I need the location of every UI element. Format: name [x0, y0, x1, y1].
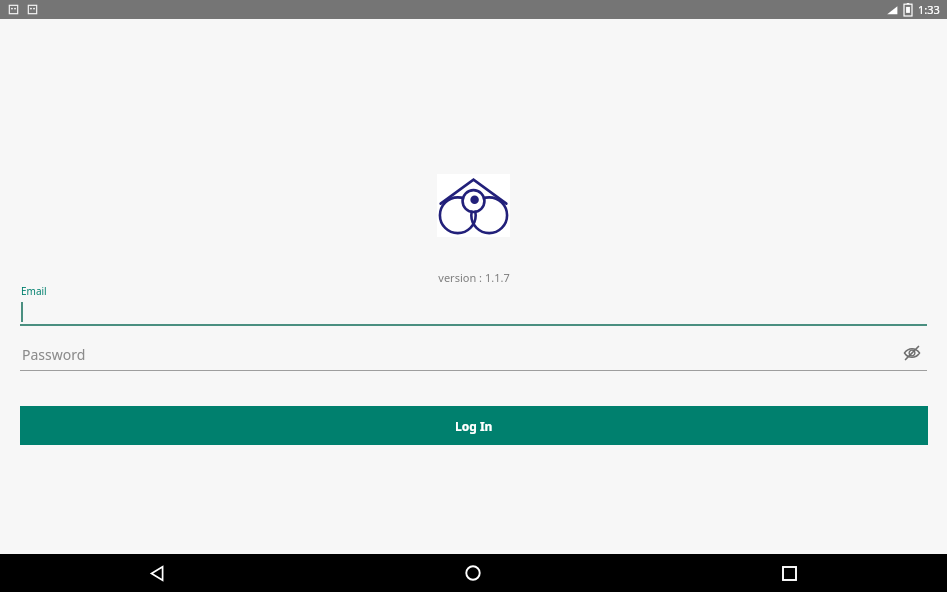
staticText: Log In [455, 418, 493, 434]
button[interactable]: Back [0, 554, 315, 592]
staticText: Password [22, 345, 86, 364]
button[interactable]: Home [315, 554, 631, 592]
button[interactable]: Log In [20, 406, 928, 445]
staticText: 1:33 [918, 2, 940, 17]
button[interactable]: Password [20, 342, 927, 371]
button[interactable]: Recent apps [631, 554, 947, 592]
staticText: version : 1.1.7 [438, 270, 510, 285]
button[interactable]: Email [20, 284, 927, 326]
staticText: Email [21, 284, 47, 298]
button[interactable]: Show password [900, 341, 924, 365]
